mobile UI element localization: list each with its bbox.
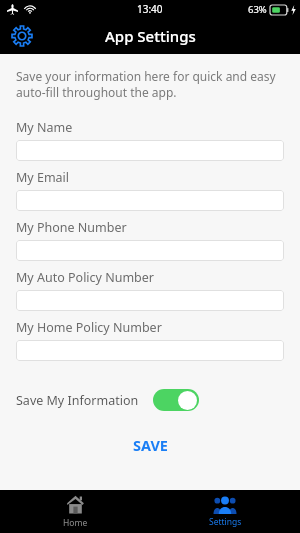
button[interactable]: Save My Information toggle xyxy=(153,389,199,411)
staticText: My Phone Number xyxy=(16,219,127,236)
staticText: App Settings xyxy=(105,26,196,46)
button[interactable] xyxy=(16,290,284,311)
button[interactable] xyxy=(16,140,284,161)
staticText: My Email xyxy=(16,169,70,186)
staticText: My Auto Policy Number xyxy=(16,269,155,286)
staticText: Home xyxy=(63,517,88,529)
staticText: Save My Information xyxy=(16,392,139,409)
button[interactable] xyxy=(16,190,284,211)
staticText: My Home Policy Number xyxy=(16,319,162,336)
button[interactable]: SAVE xyxy=(16,432,284,458)
staticText: SAVE xyxy=(133,435,168,455)
button[interactable]: Home xyxy=(0,490,150,533)
button[interactable] xyxy=(16,240,284,261)
staticText: Save your information here for quick and… xyxy=(16,68,284,101)
button[interactable]: Settings xyxy=(8,22,36,50)
staticText: Settings xyxy=(209,516,242,528)
button[interactable] xyxy=(16,340,284,361)
button[interactable]: Settings xyxy=(150,490,300,533)
staticText: 63% xyxy=(248,3,267,16)
staticText: 13:40 xyxy=(137,2,163,16)
staticText: My Name xyxy=(16,119,73,136)
